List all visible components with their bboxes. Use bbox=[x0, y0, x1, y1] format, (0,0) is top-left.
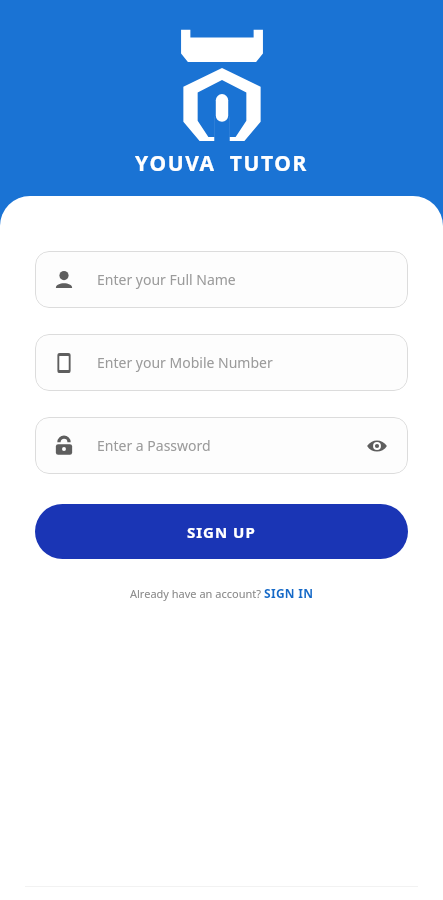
staticText: YOUVA TUTOR bbox=[135, 149, 308, 178]
staticText: Enter a Password bbox=[97, 436, 364, 455]
button[interactable]: SIGN UP bbox=[35, 504, 408, 559]
button[interactable]: Enter your Full Name bbox=[35, 251, 408, 308]
button[interactable]: SIGN IN bbox=[264, 585, 314, 601]
button[interactable]: Show password bbox=[364, 433, 390, 459]
button[interactable]: Enter a Password bbox=[35, 417, 408, 474]
staticText: Enter your Mobile Number bbox=[97, 353, 390, 372]
staticText: Enter your Full Name bbox=[97, 270, 390, 289]
staticText: SIGN UP bbox=[187, 522, 256, 542]
staticText: SIGN IN bbox=[264, 585, 314, 601]
staticText: Already have an account? bbox=[130, 586, 264, 601]
button[interactable]: Enter your Mobile Number bbox=[35, 334, 408, 391]
